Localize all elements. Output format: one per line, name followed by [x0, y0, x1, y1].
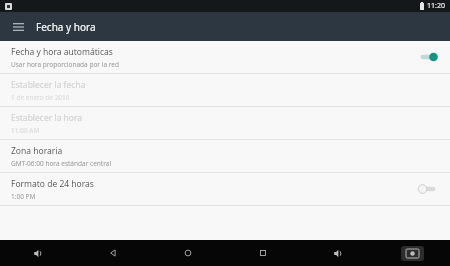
- button[interactable]: Volume up: [300, 240, 375, 266]
- button[interactable]: Establecer la hora: [0, 107, 450, 139]
- button[interactable]: Formato de 24 horas: [0, 173, 450, 205]
- staticText: 1:00 PM: [11, 192, 36, 201]
- button[interactable]: Home: [150, 240, 225, 266]
- button[interactable]: Open navigation drawer: [0, 12, 36, 41]
- button[interactable]: Fecha y hora automáticas: [0, 41, 450, 73]
- button[interactable]: Zona horaria: [0, 140, 450, 172]
- staticText: GMT-06:00 hora estándar central: [11, 159, 112, 168]
- staticText: Establecer la hora: [11, 112, 83, 124]
- staticText: 1 de enero de 2016: [11, 93, 70, 102]
- staticText: Usar hora proporcionada por la red: [11, 60, 119, 69]
- button[interactable]: Volume down: [0, 240, 75, 266]
- staticText: Establecer la fecha: [11, 79, 86, 91]
- button[interactable]: Establecer la fecha: [0, 74, 450, 106]
- button[interactable]: Back: [75, 240, 150, 266]
- staticText: Fecha y hora automáticas: [11, 46, 113, 58]
- staticText: Zona horaria: [11, 145, 63, 157]
- staticText: 11:00 AM: [11, 126, 40, 135]
- button[interactable]: Switch on: [416, 48, 440, 66]
- staticText: 11:20: [427, 1, 445, 11]
- button[interactable]: Screenshot: [375, 240, 450, 266]
- staticText: Fecha y hora: [36, 20, 96, 34]
- staticText: Formato de 24 horas: [11, 178, 94, 190]
- button[interactable]: Switch off: [416, 180, 440, 198]
- button[interactable]: Recent apps: [225, 240, 300, 266]
